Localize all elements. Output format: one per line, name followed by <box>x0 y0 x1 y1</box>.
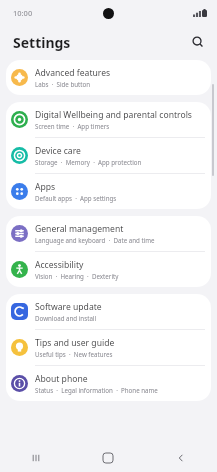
staticText: Storage · Memory · App protection <box>35 158 142 166</box>
staticText: Software update <box>35 301 102 313</box>
staticText: Vision · Hearing · Dexterity <box>35 272 119 280</box>
button[interactable]: Device care <box>6 138 211 173</box>
staticText: Download and install <box>35 314 97 322</box>
staticText: Default apps · App settings <box>35 194 117 202</box>
button[interactable]: About phone <box>6 366 211 401</box>
button[interactable]: Advanced features <box>6 60 211 95</box>
staticText: Screen time · App timers <box>35 122 110 130</box>
staticText: Digital Wellbeing and parental controls <box>35 109 192 121</box>
button[interactable]: Accessibility <box>6 252 211 287</box>
button[interactable]: Apps <box>6 174 211 209</box>
button[interactable]: General management <box>6 216 211 251</box>
button[interactable]: Search <box>187 31 209 53</box>
button[interactable]: Digital Wellbeing and parental controls <box>6 102 211 137</box>
button[interactable]: Recent apps <box>19 444 53 472</box>
staticText: Status · Legal information · Phone name <box>35 386 158 394</box>
staticText: Tips and user guide <box>35 337 115 349</box>
staticText: About phone <box>35 373 88 385</box>
staticText: Advanced features <box>35 67 111 79</box>
staticText: Settings <box>13 33 71 52</box>
staticText: Labs · Side button <box>35 80 91 88</box>
button[interactable]: Software update <box>6 294 211 329</box>
staticText: 10:00 <box>13 8 33 18</box>
staticText: Useful tips · New features <box>35 350 113 358</box>
staticText: Language and keyboard · Date and time <box>35 236 155 244</box>
button[interactable]: Back <box>164 444 198 472</box>
button[interactable]: Home <box>91 444 125 472</box>
staticText: Device care <box>35 145 81 157</box>
staticText: Accessibility <box>35 259 84 271</box>
staticText: General management <box>35 223 124 235</box>
staticText: Apps <box>35 181 56 193</box>
button[interactable]: Tips and user guide <box>6 330 211 365</box>
